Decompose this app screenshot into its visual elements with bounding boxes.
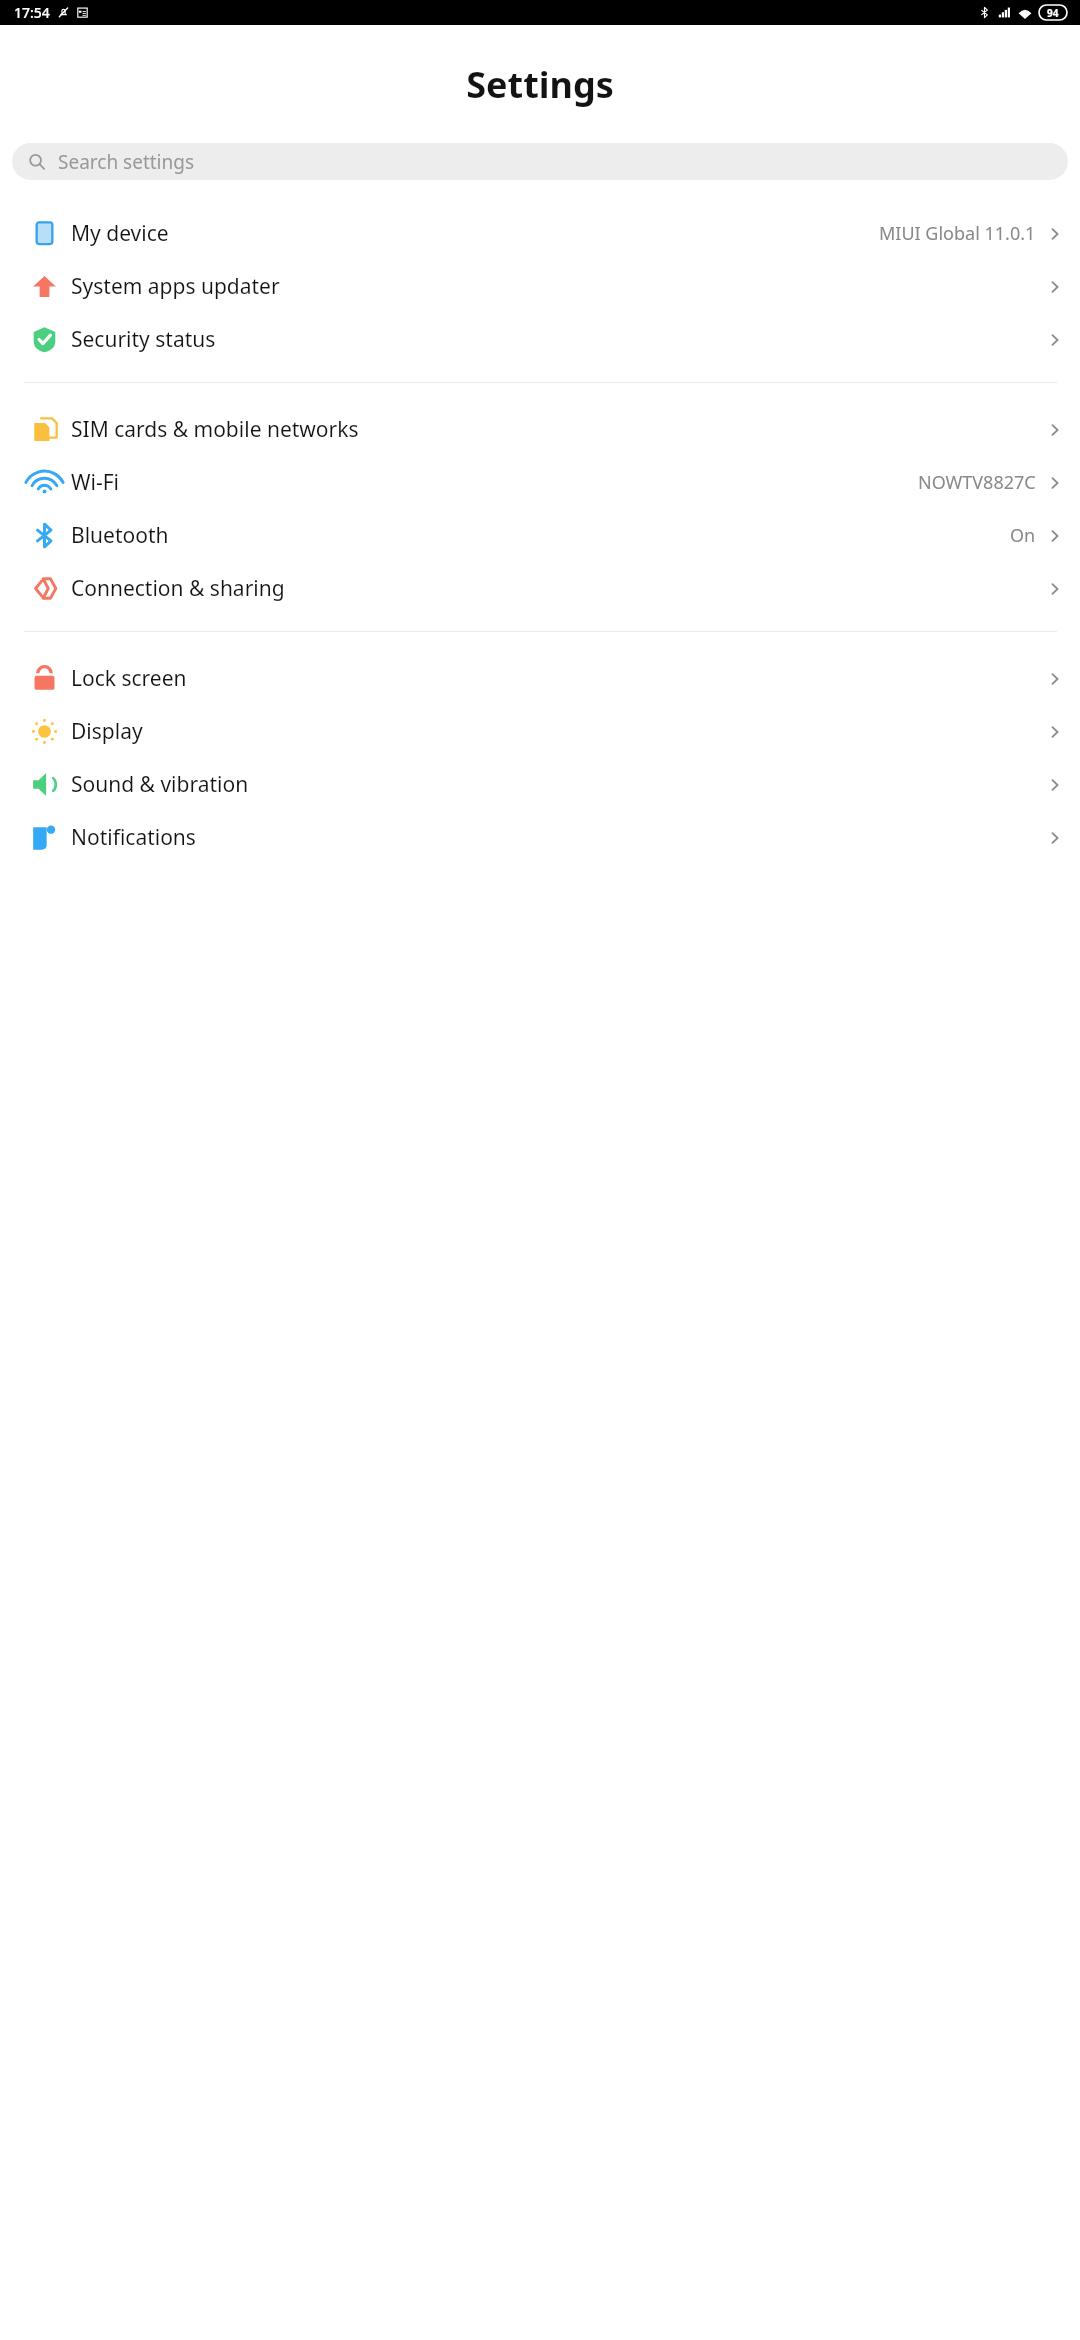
button[interactable]: Connection & sharing	[0, 562, 1080, 615]
button[interactable]: Sound & vibration	[0, 758, 1080, 811]
staticText: Sound & vibration	[71, 770, 1047, 799]
button[interactable]: Bluetooth	[0, 509, 1080, 562]
staticText: NOWTV8827C	[918, 470, 1036, 495]
staticText: 94	[1047, 6, 1059, 20]
staticText: 17:54	[14, 3, 50, 22]
button[interactable]: Display	[0, 705, 1080, 758]
staticText: System apps updater	[71, 272, 1047, 301]
staticText: Lock screen	[71, 664, 1047, 693]
staticText: Wi-Fi	[71, 468, 918, 497]
staticText: Security status	[71, 325, 1047, 354]
staticText: Display	[71, 717, 1047, 746]
staticText: Settings	[466, 60, 614, 109]
staticText: MIUI Global 11.0.1	[879, 221, 1036, 246]
button[interactable]: My device	[0, 207, 1080, 260]
staticText: Notifications	[71, 823, 1047, 852]
staticText: Connection & sharing	[71, 574, 1047, 603]
button[interactable]: SIM cards & mobile networks	[0, 403, 1080, 456]
staticText: Bluetooth	[71, 521, 1010, 550]
button[interactable]: Notifications	[0, 811, 1080, 864]
button[interactable]: Search settings	[12, 143, 1068, 180]
button[interactable]: Wi-Fi	[0, 456, 1080, 509]
button[interactable]: Lock screen	[0, 652, 1080, 705]
staticText: On	[1010, 523, 1036, 548]
staticText: SIM cards & mobile networks	[71, 415, 1047, 444]
staticText: My device	[71, 219, 879, 248]
staticText: Search settings	[58, 149, 195, 175]
button[interactable]: Security status	[0, 313, 1080, 366]
button[interactable]: System apps updater	[0, 260, 1080, 313]
